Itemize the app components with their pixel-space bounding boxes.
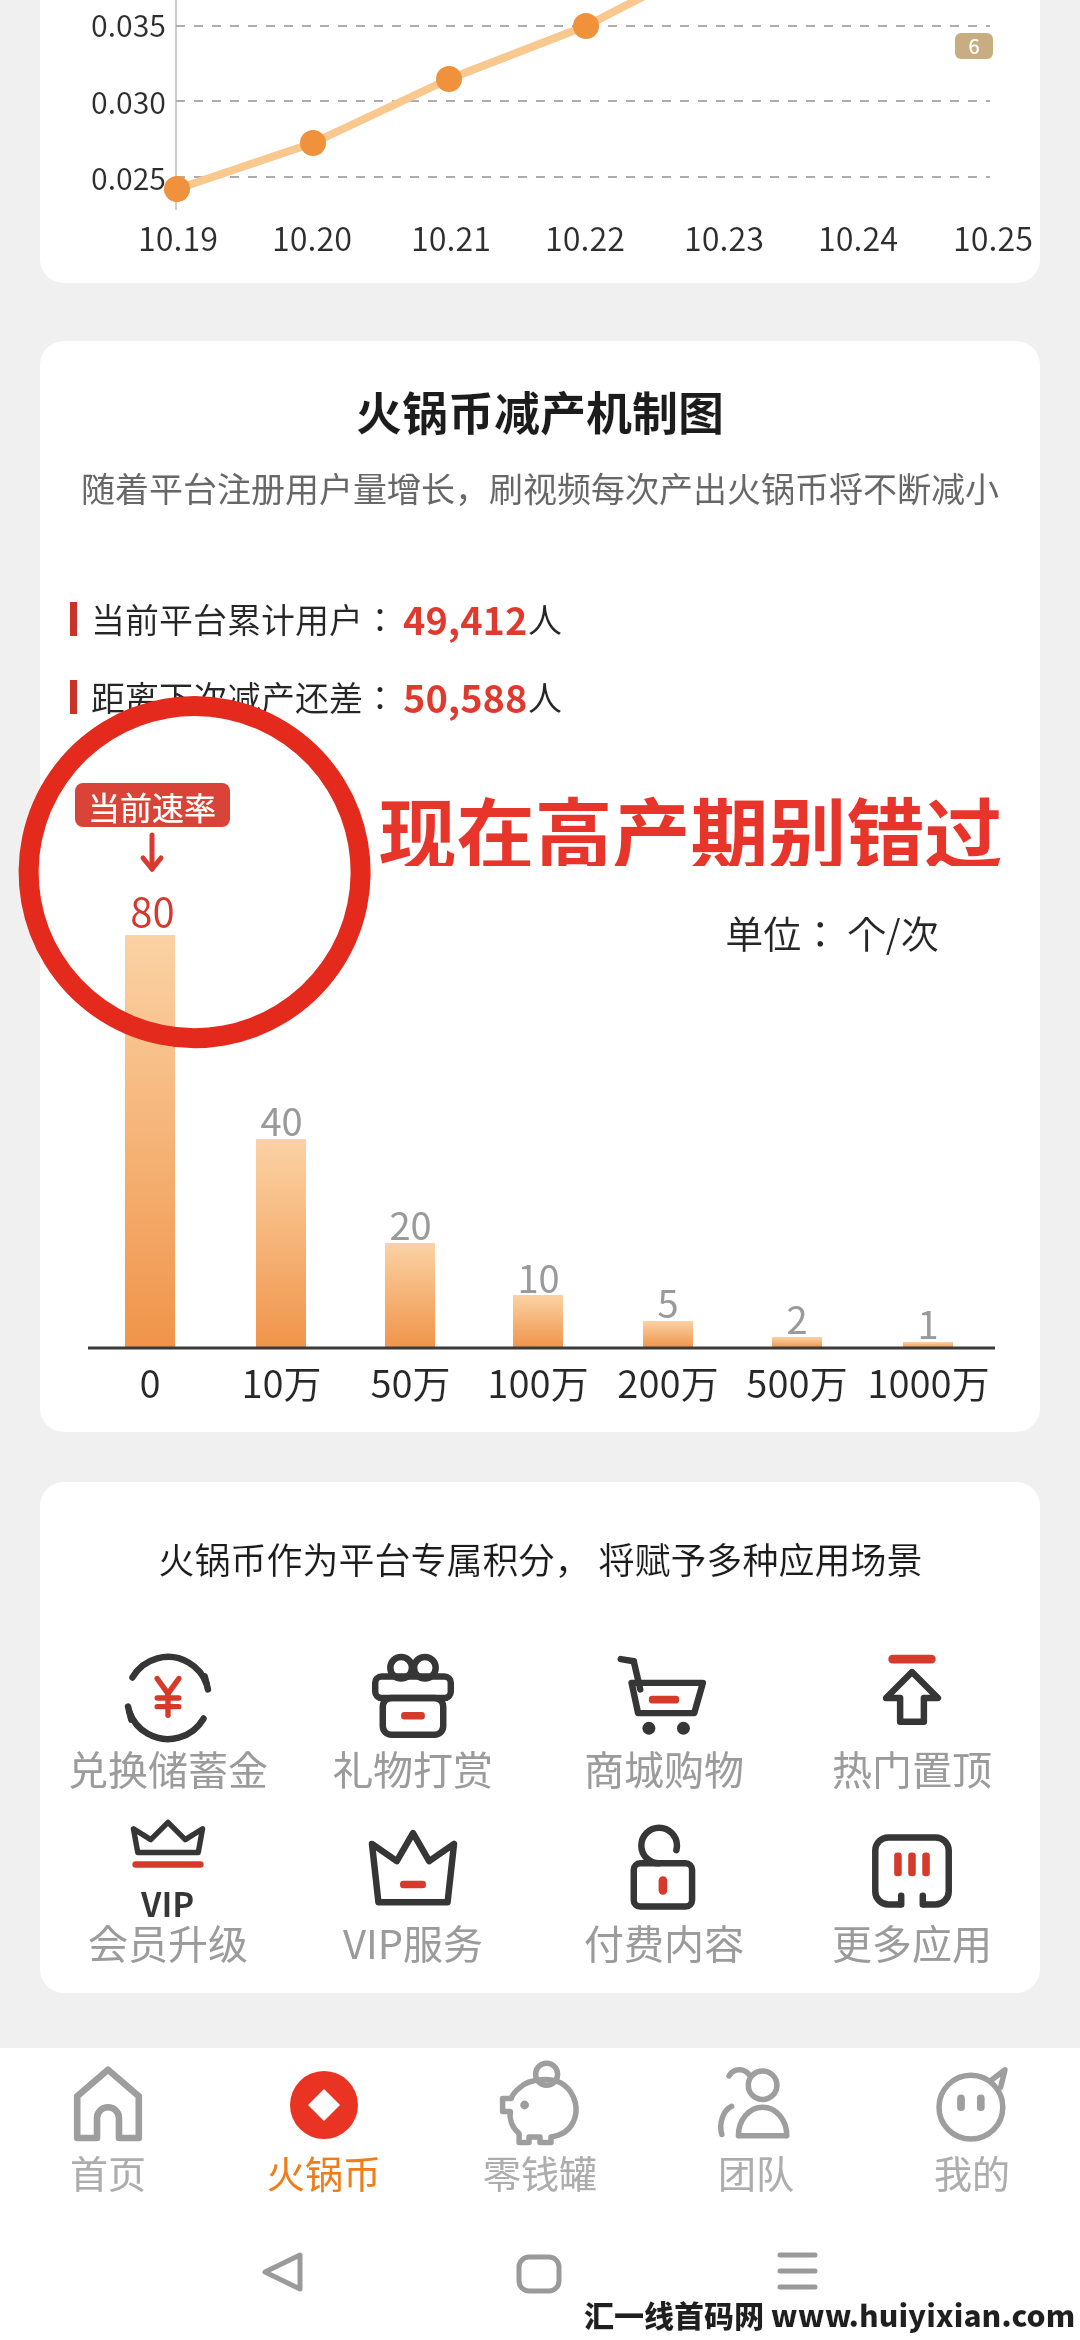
staticText: 人 xyxy=(528,594,562,643)
staticText: 我的 xyxy=(934,2144,1011,2199)
staticText: 6 xyxy=(968,31,980,60)
button[interactable]: 火锅币 xyxy=(239,2056,409,2196)
button[interactable]: 兑换储蓄金 xyxy=(58,1643,278,1800)
staticText: 随着平台注册用户量增长，刷视频每次产出火锅币将不断减小 xyxy=(81,463,999,511)
staticText: 40 xyxy=(260,1092,303,1144)
staticText: 0.035 xyxy=(91,2,166,45)
staticText: 单位： 个/次 xyxy=(725,904,939,956)
staticText: 0 xyxy=(139,1354,161,1406)
button[interactable]: 热门置顶 xyxy=(802,1643,1022,1800)
button[interactable]: 会员升级 xyxy=(58,1817,278,1974)
staticText: 零钱罐 xyxy=(483,2144,598,2199)
staticText: 200万 xyxy=(617,1354,719,1406)
button[interactable] xyxy=(712,2228,882,2318)
staticText: 当前平台累计用户： xyxy=(91,594,397,643)
button[interactable]: 零钱罐 xyxy=(455,2056,625,2196)
staticText: 团队 xyxy=(718,2144,795,2199)
button[interactable]: 首页 xyxy=(23,2056,193,2196)
staticText: 现在高产期别错过 xyxy=(378,774,1003,866)
staticText: 火锅币减产机制图 xyxy=(356,377,724,437)
staticText: 1 xyxy=(917,1295,939,1347)
button[interactable] xyxy=(200,2228,370,2318)
staticText: 1000万 xyxy=(867,1354,990,1406)
staticText: 10 xyxy=(517,1249,560,1301)
staticText: 20 xyxy=(389,1196,432,1248)
staticText: 10.25 xyxy=(953,214,1033,260)
staticText: 50,588 xyxy=(403,669,528,724)
staticText: 0.025 xyxy=(91,155,166,198)
button[interactable]: 付费内容 xyxy=(554,1817,774,1974)
staticText: 汇一线首码网 www.huiyixian.com xyxy=(584,2292,1076,2335)
staticText: 火锅币作为平台专属积分， 将赋予多种应用场景 xyxy=(158,1532,923,1582)
button[interactable]: 团队 xyxy=(671,2056,841,2196)
staticText: 热门置顶 xyxy=(832,1739,992,1797)
staticText: 兑换储蓄金 xyxy=(68,1739,268,1797)
staticText: 10.24 xyxy=(818,214,898,260)
button[interactable]: 礼物打赏 xyxy=(303,1643,523,1800)
staticText: 10.21 xyxy=(411,214,491,260)
staticText: 距离下次减产还差： xyxy=(91,672,397,721)
staticText: VIP xyxy=(141,1879,195,1927)
staticText: 更多应用 xyxy=(832,1913,992,1971)
staticText: 会员升级 xyxy=(88,1913,248,1971)
staticText: 49,412 xyxy=(403,591,528,646)
button[interactable]: 当前速率 xyxy=(75,783,230,827)
staticText: 2 xyxy=(786,1290,808,1342)
button[interactable]: 更多应用 xyxy=(802,1817,1022,1974)
staticText: 10万 xyxy=(241,1354,322,1406)
staticText: 付费内容 xyxy=(584,1913,744,1971)
staticText: 首页 xyxy=(70,2144,147,2199)
staticText: 500万 xyxy=(746,1354,848,1406)
button[interactable]: 商城购物 xyxy=(554,1643,774,1800)
button[interactable]: 我的 xyxy=(887,2056,1057,2196)
staticText: VIP服务 xyxy=(343,1913,484,1971)
staticText: 5 xyxy=(657,1274,679,1326)
staticText: 10.22 xyxy=(545,214,625,260)
staticText: 人 xyxy=(528,672,562,721)
staticText: 10.20 xyxy=(272,214,352,260)
staticText: 当前速率 xyxy=(88,783,217,827)
button[interactable] xyxy=(455,2228,625,2318)
staticText: 商城购物 xyxy=(584,1739,744,1797)
staticText: 10.23 xyxy=(684,214,764,260)
staticText: 80 xyxy=(130,881,175,935)
button[interactable]: VIP服务 xyxy=(303,1817,523,1974)
staticText: 50万 xyxy=(370,1354,451,1406)
staticText: 100万 xyxy=(487,1354,589,1406)
staticText: 火锅币 xyxy=(267,2144,382,2199)
staticText: 10.19 xyxy=(138,214,218,260)
staticText: 礼物打赏 xyxy=(333,1739,493,1797)
staticText: 0.030 xyxy=(91,79,166,122)
